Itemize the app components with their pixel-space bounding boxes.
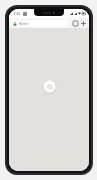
button[interactable]: Search — [43, 80, 56, 93]
button[interactable]: New tab — [79, 19, 87, 27]
staticText: Home — [19, 22, 29, 26]
button[interactable]: Home — [11, 20, 69, 27]
staticText: 12:30 — [12, 12, 21, 16]
button[interactable]: Tabs — [71, 19, 79, 27]
